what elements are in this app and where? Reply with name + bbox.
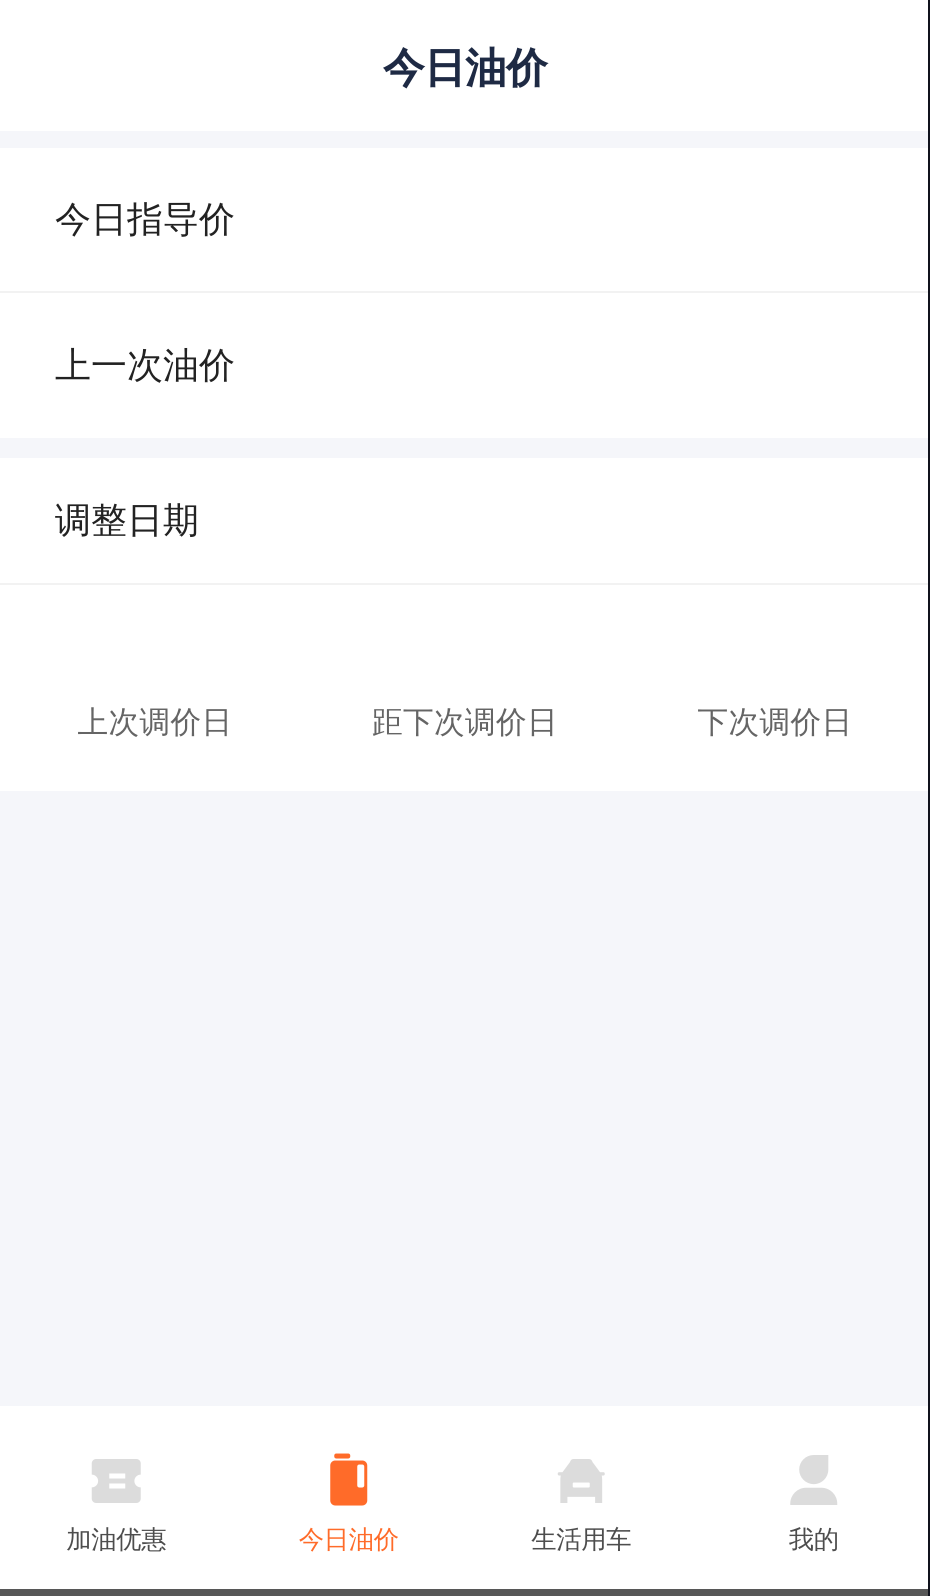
staticText: 我的: [789, 1524, 839, 1555]
staticText: 加油优惠: [66, 1524, 166, 1555]
button[interactable]: 上一次油价: [0, 293, 930, 438]
button[interactable]: 调整日期: [0, 458, 930, 583]
staticText: 上一次油价: [55, 343, 235, 388]
staticText: 今日油价: [299, 1524, 399, 1555]
staticText: 距下次调价日: [372, 703, 558, 741]
staticText: 今日油价: [383, 43, 547, 94]
staticText: 调整日期: [55, 498, 199, 543]
button[interactable]: 今日油价: [232, 1406, 465, 1589]
staticText: 上次调价日: [77, 703, 232, 741]
staticText: 生活用车: [531, 1524, 631, 1555]
button[interactable]: 加油优惠: [0, 1406, 232, 1589]
staticText: 今日指导价: [55, 197, 235, 242]
button[interactable]: 生活用车: [465, 1406, 697, 1589]
button[interactable]: 我的: [697, 1406, 930, 1589]
staticText: 下次调价日: [697, 703, 852, 741]
button[interactable]: 今日指导价: [0, 148, 930, 291]
